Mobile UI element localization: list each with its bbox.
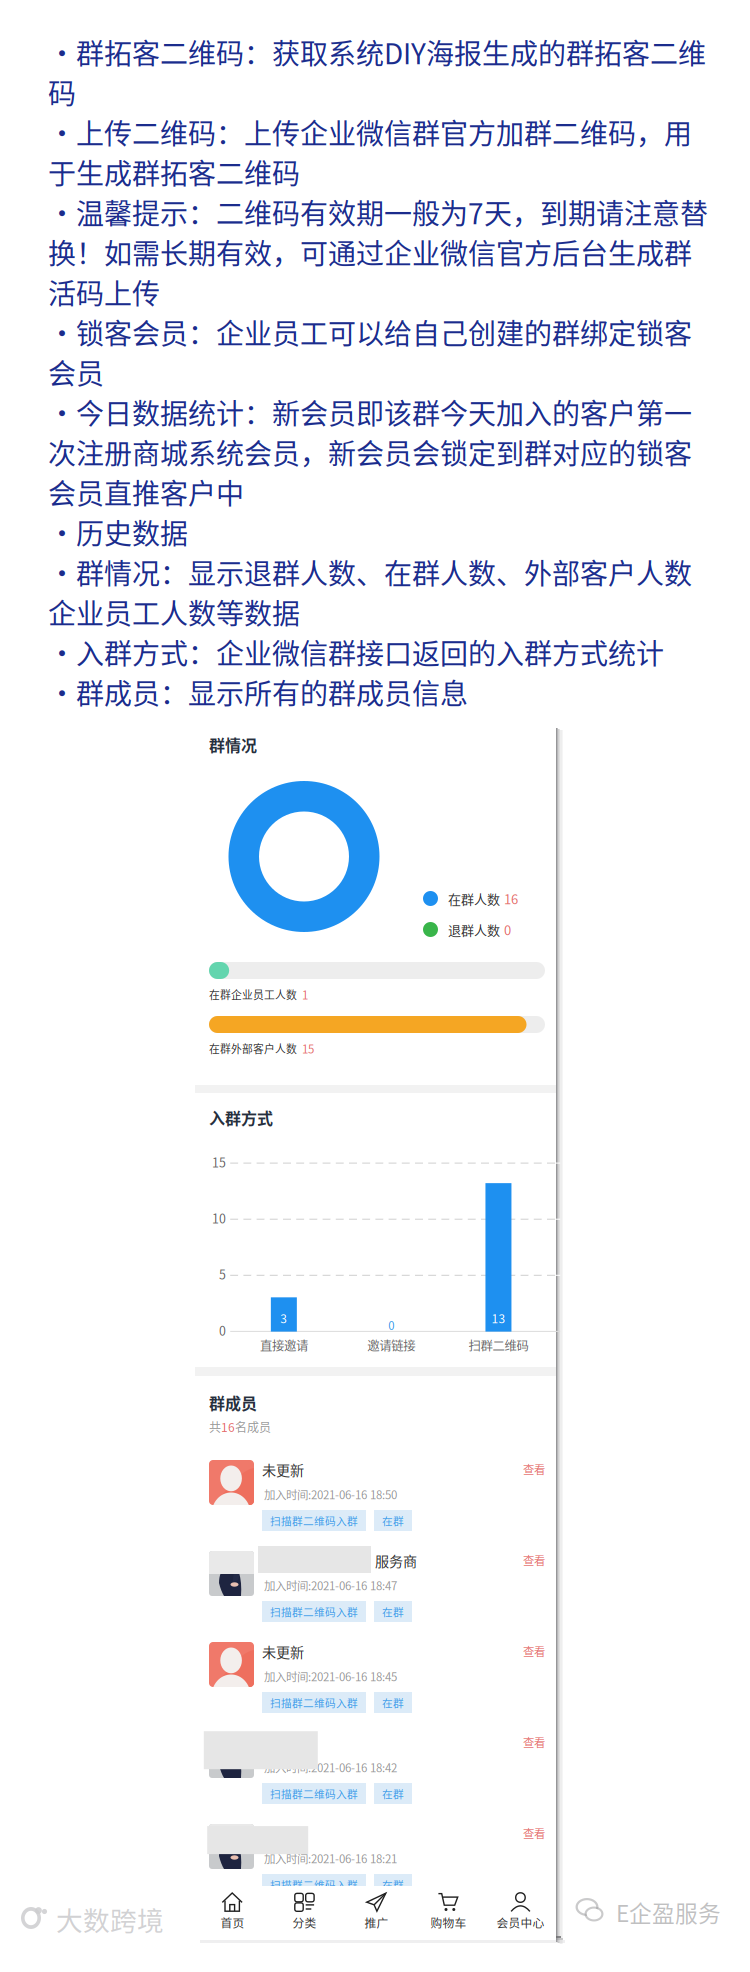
staticText: 邀请链接: [367, 1336, 415, 1354]
staticText: 活码上传: [48, 272, 160, 312]
staticText: E企盈服务: [616, 1896, 721, 1928]
staticText: ·入群方式：企业微信群接口返回的入群方式统计: [48, 632, 664, 672]
staticText: 15: [302, 1040, 314, 1057]
staticText: 入群方式: [209, 1106, 273, 1129]
staticText: 码: [48, 72, 76, 112]
staticText: 13: [491, 1309, 505, 1327]
button[interactable]: 查看: [511, 1461, 545, 1477]
staticText: 扫描群二维码入群: [270, 1786, 358, 1801]
staticText: ·温馨提示：二维码有效期一般为7天，到期请注意替: [48, 192, 708, 232]
staticText: 首页: [220, 1914, 244, 1931]
staticText: 未更新: [262, 1641, 304, 1661]
staticText: 加入时间:2021-06-16 18:45: [264, 1668, 397, 1685]
staticText: 会员: [48, 352, 104, 392]
staticText: ·群成员：显示所有的群成员信息: [48, 672, 468, 712]
button[interactable]: 查看: [511, 1643, 545, 1659]
staticText: 推广: [364, 1914, 388, 1931]
staticText: 在群: [382, 1695, 404, 1710]
staticText: 0: [388, 1317, 394, 1333]
staticText: 3: [280, 1309, 287, 1327]
staticText: 查看: [523, 1734, 545, 1750]
staticText: 在群: [382, 1513, 404, 1528]
button[interactable]: 会员中心: [484, 1886, 556, 1945]
staticText: 扫描群二维码入群: [270, 1604, 358, 1619]
staticText: 扫描群二维码入群: [270, 1695, 358, 1710]
button[interactable]: 查看: [511, 1552, 545, 1568]
staticText: ·群情况：显示退群人数、在群人数、外部客户人数: [48, 552, 692, 592]
staticText: 扫描群二维码入群: [270, 1513, 358, 1528]
staticText: 16: [504, 889, 518, 908]
staticText: 0: [219, 1321, 226, 1339]
staticText: 群成员: [209, 1391, 257, 1414]
staticText: 扫描群二维码入群: [270, 1877, 358, 1892]
staticText: ·上传二维码：上传企业微信群官方加群二维码，用: [48, 112, 692, 152]
staticText: 加入时间:2021-06-16 18:42: [264, 1759, 397, 1776]
staticText: 加入时间:2021-06-16 18:47: [264, 1577, 397, 1594]
staticText: 未更新: [262, 1459, 304, 1479]
staticText: 服务商: [375, 1550, 417, 1570]
staticText: 换！如需长期有效，可通过企业微信官方后台生成群: [48, 232, 692, 272]
staticText: 购物车: [430, 1914, 466, 1931]
staticText: 大数跨境: [56, 1900, 164, 1938]
staticText: 于生成群拓客二维码: [48, 152, 300, 192]
staticText: 名成员: [235, 1418, 271, 1435]
staticText: ·锁客会员：企业员工可以给自己创建的群绑定锁客: [48, 312, 692, 352]
staticText: 企业员工人数等数据: [48, 592, 300, 632]
staticText: 查看: [523, 1552, 545, 1568]
staticText: 分类: [292, 1914, 316, 1931]
staticText: 在群: [382, 1604, 404, 1619]
staticText: 共: [209, 1418, 221, 1435]
staticText: ·群拓客二维码：获取系统DIY海报生成的群拓客二维: [48, 32, 706, 72]
staticText: 查看: [523, 1461, 545, 1477]
staticText: 0: [504, 920, 511, 939]
staticText: 加入时间:2021-06-16 18:50: [264, 1486, 397, 1503]
staticText: 在群企业员工人数: [209, 987, 297, 1002]
staticText: 在群: [382, 1877, 404, 1892]
button[interactable]: 首页: [196, 1886, 268, 1945]
staticText: 在群: [382, 1786, 404, 1801]
staticText: 10: [212, 1209, 226, 1227]
staticText: 16: [221, 1418, 235, 1435]
button[interactable]: 分类: [268, 1886, 340, 1945]
button[interactable]: 购物车: [412, 1886, 484, 1945]
staticText: 直接邀请: [260, 1336, 308, 1354]
staticText: 扫群二维码: [468, 1336, 528, 1354]
staticText: 会员直推客户中: [48, 472, 244, 512]
staticText: 退群人数: [448, 920, 500, 939]
staticText: 15: [212, 1153, 226, 1171]
staticText: 次注册商城系统会员，新会员会锁定到群对应的锁客: [48, 432, 692, 472]
button[interactable]: 查看: [511, 1825, 545, 1841]
staticText: 1: [302, 986, 308, 1003]
staticText: 在群外部客户人数: [209, 1041, 297, 1056]
staticText: 5: [219, 1265, 226, 1283]
staticText: 群情况: [209, 733, 257, 756]
staticText: 查看: [523, 1643, 545, 1659]
staticText: 会员中心: [496, 1914, 544, 1931]
button[interactable]: 推广: [340, 1886, 412, 1945]
staticText: 在群人数: [448, 889, 500, 908]
staticText: ·历史数据: [48, 512, 188, 552]
button[interactable]: 查看: [511, 1734, 545, 1750]
staticText: ·今日数据统计：新会员即该群今天加入的客户第一: [48, 392, 692, 432]
staticText: 查看: [523, 1825, 545, 1841]
staticText: 加入时间:2021-06-16 18:21: [264, 1850, 397, 1867]
